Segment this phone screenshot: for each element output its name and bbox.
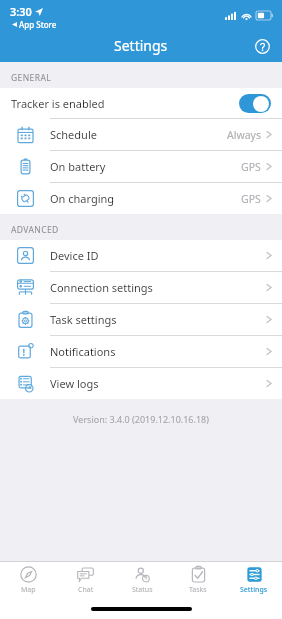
- staticText: Version: 3.4.0 (2019.12.10.16.18): [0, 413, 282, 425]
- button[interactable]: Schedule: [0, 119, 282, 150]
- staticText: Settings: [240, 585, 268, 595]
- staticText: GPS: [241, 160, 261, 174]
- staticText: On charging: [50, 191, 115, 206]
- staticText: Tracker is enabled: [11, 96, 105, 111]
- staticText: Task settings: [50, 312, 117, 327]
- staticText: Notifications: [50, 344, 116, 359]
- button[interactable]: Tasks: [170, 562, 226, 599]
- staticText: 3:30: [10, 4, 32, 19]
- button[interactable]: Map: [0, 562, 57, 599]
- staticText: Chat: [78, 585, 94, 595]
- staticText: Map: [21, 585, 36, 595]
- button[interactable]: Connection settings: [0, 272, 282, 303]
- staticText: Connection settings: [50, 280, 153, 295]
- staticText: Tasks: [189, 585, 207, 595]
- staticText: Always: [227, 128, 261, 142]
- staticText: Device ID: [50, 248, 99, 263]
- button[interactable]: Task settings: [0, 304, 282, 335]
- button[interactable]: On battery: [0, 151, 282, 182]
- staticText: ADVANCED: [11, 224, 59, 236]
- button[interactable]: Device ID: [0, 240, 282, 271]
- staticText: Status: [132, 585, 153, 595]
- staticText: GPS: [241, 192, 261, 206]
- staticText: App Store: [19, 19, 57, 30]
- staticText: On battery: [50, 159, 106, 174]
- button[interactable]: View logs: [0, 368, 282, 399]
- button[interactable]: On charging: [0, 183, 282, 214]
- button[interactable]: Status: [114, 562, 170, 599]
- button[interactable]: Chat: [57, 562, 114, 599]
- button[interactable]: Tracker is enabled: [0, 88, 282, 118]
- button[interactable]: Notifications: [0, 336, 282, 367]
- staticText: View logs: [50, 376, 99, 391]
- button[interactable]: Help: [249, 33, 275, 59]
- button[interactable]: Settings: [226, 562, 282, 599]
- staticText: GENERAL: [11, 72, 52, 84]
- staticText: Schedule: [50, 127, 97, 142]
- staticText: Settings: [114, 36, 168, 55]
